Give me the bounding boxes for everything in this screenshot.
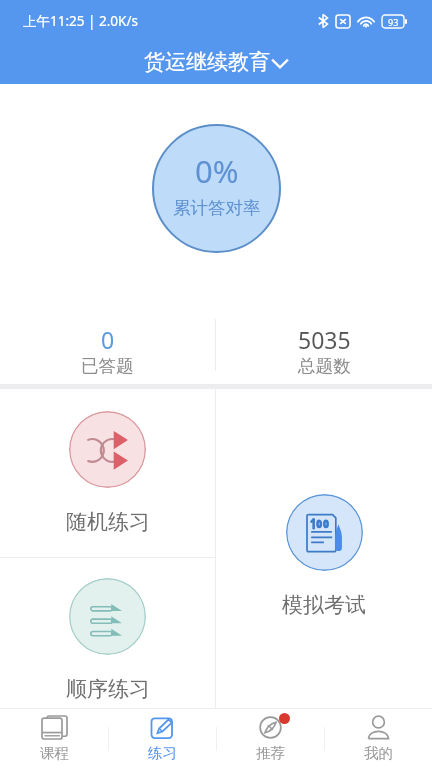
button[interactable]: 课程 bbox=[0, 709, 108, 768]
button[interactable]: 5035 bbox=[216, 306, 432, 384]
staticText: 累计答对率 bbox=[173, 197, 261, 219]
button[interactable]: 练习 bbox=[108, 709, 216, 768]
button[interactable]: 推荐 bbox=[216, 709, 324, 768]
staticText: 练习 bbox=[148, 744, 177, 762]
button[interactable]: 货运继续教育 bbox=[136, 45, 297, 79]
staticText: 模拟考试 bbox=[282, 592, 366, 618]
staticText: 5035 bbox=[298, 324, 351, 355]
button[interactable]: 模拟考试 bbox=[216, 389, 432, 708]
staticText: 我的 bbox=[364, 744, 393, 762]
staticText: 课程 bbox=[40, 744, 69, 762]
staticText: 已答题 bbox=[81, 355, 134, 377]
staticText: 总题数 bbox=[298, 355, 351, 377]
staticText: 0 bbox=[101, 324, 115, 355]
staticText: 上午11:25 | 2.0K/s bbox=[23, 12, 138, 30]
button[interactable]: 我的 bbox=[324, 709, 432, 768]
button[interactable]: 0 bbox=[0, 306, 215, 384]
staticText: 货运继续教育 bbox=[144, 49, 270, 75]
staticText: 93 bbox=[388, 16, 399, 28]
staticText: 0% bbox=[195, 150, 239, 192]
staticText: 顺序练习 bbox=[66, 676, 150, 702]
button[interactable]: 随机练习 bbox=[0, 389, 215, 557]
button[interactable]: 顺序练习 bbox=[0, 558, 215, 708]
staticText: 随机练习 bbox=[66, 509, 150, 535]
staticText: 推荐 bbox=[256, 744, 285, 762]
